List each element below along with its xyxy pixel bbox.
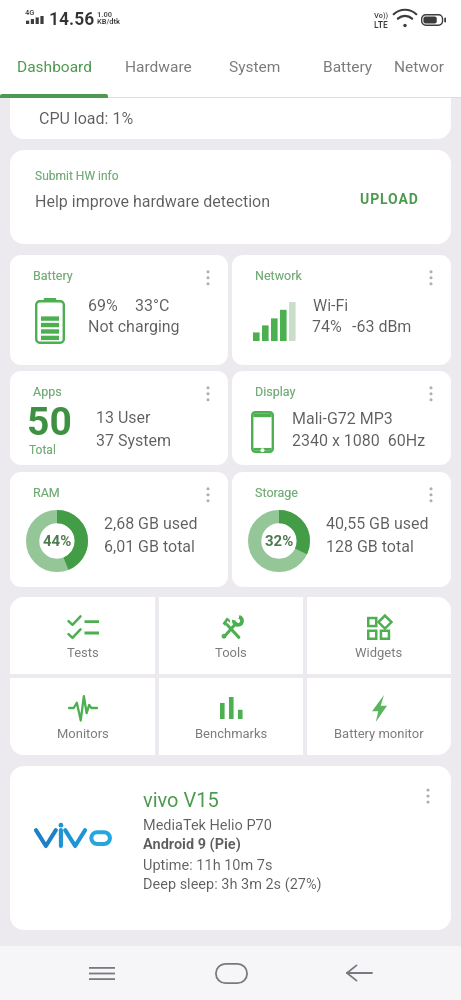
staticText: 14.56 bbox=[49, 9, 95, 30]
staticText: Monitors bbox=[57, 726, 109, 741]
staticText: 44% bbox=[43, 532, 72, 550]
staticText: 33°C bbox=[135, 296, 170, 315]
staticText: Display bbox=[255, 384, 296, 399]
staticText: Android 9 (Pie) bbox=[143, 836, 241, 853]
button[interactable]: Submit HW info bbox=[10, 150, 451, 244]
staticText: Vo)) bbox=[374, 11, 389, 20]
staticText: Battery bbox=[323, 58, 373, 76]
staticText: 1.00 bbox=[97, 10, 113, 19]
staticText: 69% bbox=[88, 296, 118, 315]
button[interactable]: More options bbox=[196, 379, 220, 403]
staticText: RAM bbox=[33, 485, 60, 500]
button[interactable]: Benchmarks bbox=[159, 678, 303, 755]
button[interactable]: More options bbox=[196, 480, 220, 504]
staticText: Submit HW info bbox=[35, 169, 119, 183]
staticText: Widgets bbox=[355, 645, 403, 660]
button[interactable]: Battery bbox=[10, 255, 228, 365]
button[interactable]: Battery monitor bbox=[307, 678, 451, 755]
staticText: 128 GB total bbox=[326, 537, 414, 556]
staticText: KB/dtk bbox=[97, 17, 121, 26]
staticText: Not charging bbox=[88, 317, 180, 336]
button[interactable]: Network bbox=[232, 255, 451, 365]
staticText: System bbox=[229, 58, 281, 76]
button[interactable]: Storage bbox=[232, 472, 451, 587]
staticText: CPU load: 1% bbox=[39, 109, 134, 128]
button[interactable]: System bbox=[208, 40, 301, 94]
staticText: Battery bbox=[33, 268, 73, 283]
staticText: 2340 x 1080 60Hz bbox=[292, 431, 426, 450]
staticText: 74% bbox=[312, 317, 342, 336]
staticText: 32% bbox=[265, 532, 294, 550]
button[interactable]: Display bbox=[232, 371, 451, 465]
button[interactable]: Recents bbox=[76, 947, 128, 999]
staticText: Networ bbox=[394, 58, 445, 76]
staticText: Deep sleep: 3h 3m 2s (27%) bbox=[143, 876, 322, 893]
staticText: Network bbox=[255, 268, 302, 283]
staticText: vivo V15 bbox=[143, 788, 219, 811]
button[interactable]: More options bbox=[416, 784, 440, 808]
staticText: 50 bbox=[27, 399, 72, 445]
staticText: 6,01 GB total bbox=[104, 537, 195, 556]
button[interactable]: Apps bbox=[10, 371, 228, 465]
staticText: Total bbox=[29, 443, 56, 457]
button[interactable]: More options bbox=[196, 263, 220, 287]
button[interactable]: Tests bbox=[10, 597, 155, 674]
staticText: Apps bbox=[33, 384, 62, 399]
staticText: 13 User bbox=[96, 408, 151, 427]
button[interactable]: Monitors bbox=[10, 678, 155, 755]
button[interactable]: Battery bbox=[301, 40, 394, 94]
button[interactable]: vivo V15 bbox=[10, 766, 451, 930]
staticText: 4G bbox=[25, 8, 35, 17]
staticText: Tests bbox=[67, 645, 99, 660]
staticText: Mali-G72 MP3 bbox=[292, 409, 393, 428]
button[interactable]: Dashboard bbox=[0, 40, 108, 94]
button[interactable]: Networ bbox=[394, 40, 461, 94]
staticText: Tools bbox=[215, 645, 247, 660]
staticText: -63 dBm bbox=[352, 317, 412, 336]
button[interactable]: More options bbox=[419, 379, 443, 403]
staticText: 40,55 GB used bbox=[326, 514, 429, 533]
button[interactable]: CPU load: 1% bbox=[10, 98, 451, 139]
button[interactable]: More options bbox=[419, 263, 443, 287]
staticText: Dashboard bbox=[17, 58, 92, 76]
staticText: Uptime: 11h 10m 7s bbox=[143, 857, 273, 874]
button[interactable]: UPLOAD bbox=[348, 183, 431, 215]
button[interactable]: Home bbox=[205, 947, 257, 999]
staticText: LTE bbox=[374, 20, 388, 30]
button[interactable]: RAM bbox=[10, 472, 228, 587]
staticText: Benchmarks bbox=[195, 726, 268, 741]
button[interactable]: Hardware bbox=[108, 40, 208, 94]
staticText: Wi-Fi bbox=[313, 296, 349, 315]
button[interactable]: Tools bbox=[159, 597, 303, 674]
staticText: Help improve hardware detection bbox=[35, 192, 270, 211]
staticText: 37 System bbox=[96, 431, 172, 450]
staticText: Hardware bbox=[125, 58, 192, 76]
staticText: 2,68 GB used bbox=[104, 514, 198, 533]
staticText: Battery monitor bbox=[334, 726, 424, 741]
staticText: MediaTek Helio P70 bbox=[143, 817, 272, 834]
staticText: UPLOAD bbox=[360, 191, 419, 207]
button[interactable]: Back bbox=[333, 947, 385, 999]
button[interactable]: Widgets bbox=[307, 597, 451, 674]
button[interactable]: More options bbox=[419, 480, 443, 504]
staticText: Storage bbox=[255, 485, 298, 500]
